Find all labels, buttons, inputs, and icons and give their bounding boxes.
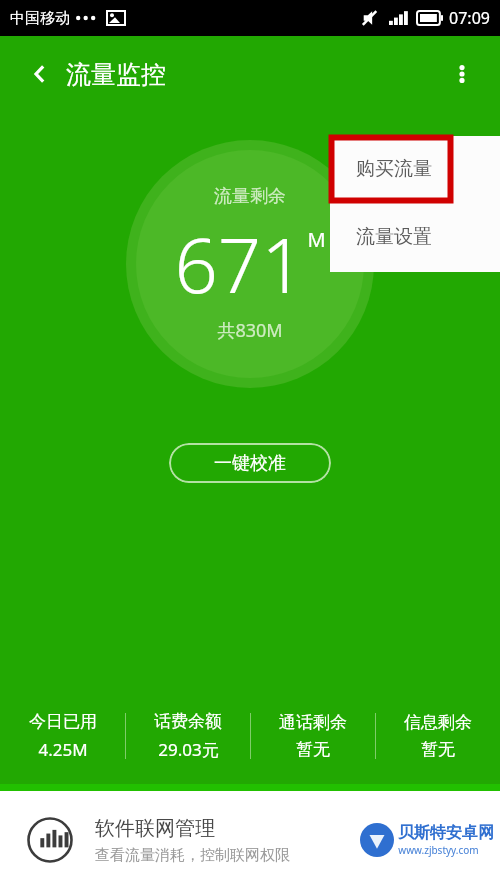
button[interactable]: More options [438,50,486,98]
staticText: 今日已用 [29,711,97,732]
staticText: 一键校准 [214,452,286,475]
staticText: 暂无 [421,739,455,760]
staticText: 通话剩余 [279,712,347,733]
staticText: 671 [174,212,305,316]
staticText: M [307,226,326,253]
button[interactable]: 流量设置 [330,202,500,272]
staticText: 软件联网管理 [95,816,215,841]
staticText: 07:09 [449,7,490,29]
staticText: 查看流量消耗，控制联网权限 [95,846,290,865]
staticText: 4.25M [38,738,88,761]
staticText: 信息剩余 [404,712,472,733]
staticText: 共830M [217,318,283,343]
button[interactable]: 今日已用 [0,688,125,784]
button[interactable]: 话费余额 [126,688,250,784]
staticText: 流量监控 [66,59,166,90]
button[interactable]: 软件联网管理 [0,791,500,889]
button[interactable]: Back [18,52,62,96]
staticText: 暂无 [296,739,330,760]
button[interactable]: 信息剩余 [376,688,500,784]
staticText: 流量剩余 [214,185,286,208]
staticText: 流量设置 [356,225,432,249]
button[interactable]: 一键校准 [169,443,331,483]
staticText: 话费余额 [154,711,222,732]
staticText: 29.03元 [158,738,219,761]
staticText: 购买流量 [356,157,432,181]
staticText: 贝斯特安卓网 [398,823,494,843]
staticText: www.zjbstyy.com [398,843,479,857]
button[interactable]: 通话剩余 [251,688,375,784]
button[interactable]: 购买流量 [330,136,500,202]
staticText: 中国移动 [10,9,70,28]
